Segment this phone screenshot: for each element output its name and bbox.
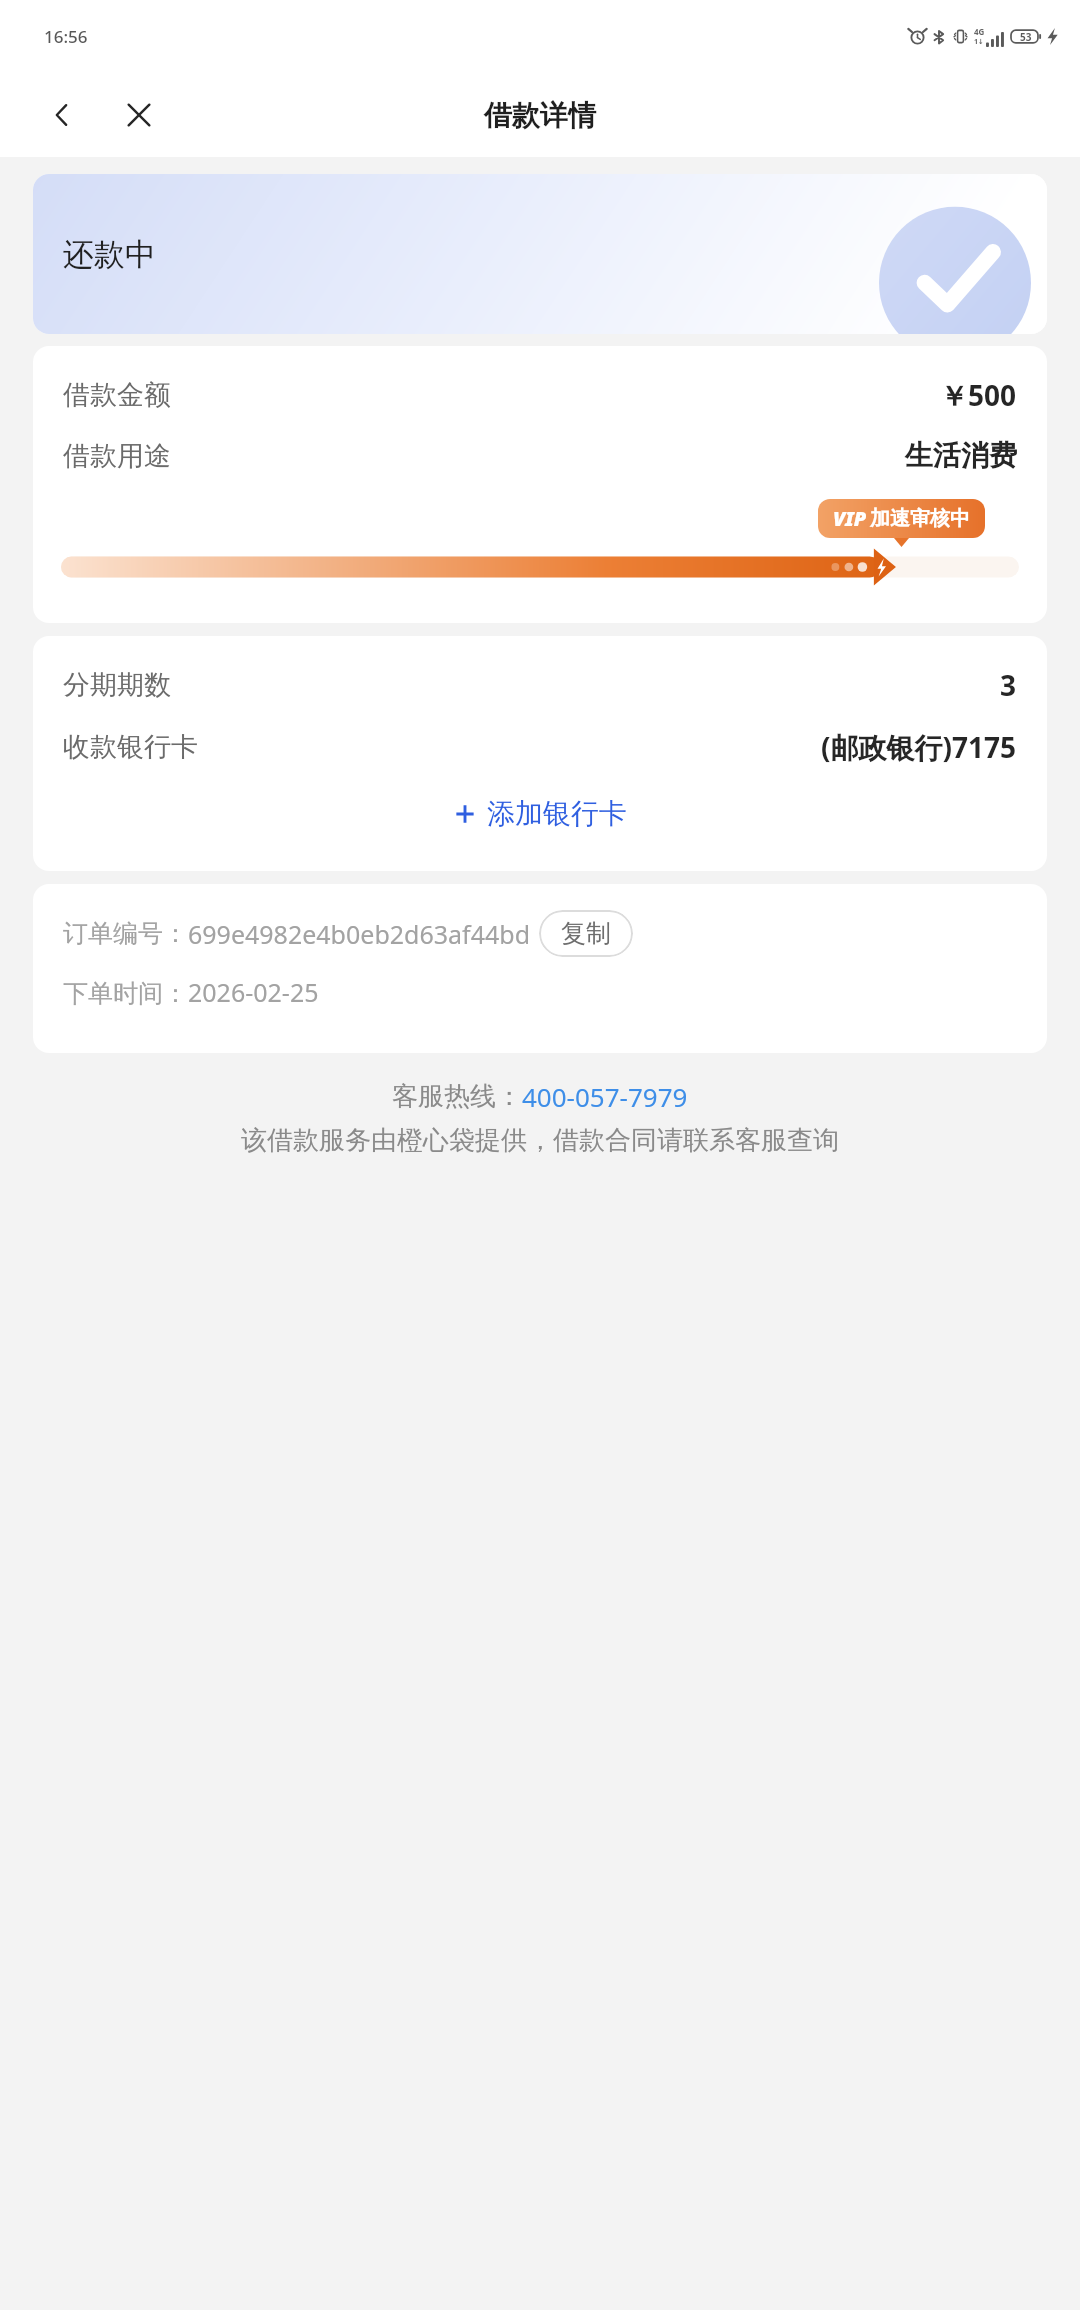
staticText: 加速审核中 [870,506,970,531]
button[interactable]: Close [114,90,164,140]
button[interactable]: 添加银行卡 [33,784,1047,843]
staticText: 生活消费 [905,438,1017,473]
staticText: (邮政银行)7175 [821,728,1017,766]
staticText: 订单编号： [63,918,188,949]
staticText: 借款用途 [63,439,171,473]
staticText: 下单时间：2026-02-25 [63,975,319,1009]
staticText: VIP [833,505,867,532]
staticText: 客服热线： [392,1080,522,1113]
staticText: 699e4982e4b0eb2d63af44bd [188,917,531,951]
staticText: 添加银行卡 [487,796,627,831]
staticText: 1↓ [974,37,984,47]
staticText: 借款金额 [63,378,171,412]
staticText: 借款详情 [484,98,596,133]
button[interactable]: 还款中 [33,174,1047,334]
staticText: 3 [1000,666,1017,704]
staticText: ￥500 [940,376,1017,414]
button[interactable]: Back [38,91,86,139]
staticText: 4G [974,26,985,37]
staticText: 16:56 [44,25,88,48]
staticText: 还款中 [63,235,156,274]
staticText: 53 [1020,30,1032,44]
staticText: 分期期数 [63,668,171,702]
staticText: 400-057-7979 [522,1079,688,1114]
staticText: 该借款服务由橙心袋提供，借款合同请联系客服查询 [241,1124,839,1157]
staticText: 复制 [561,918,611,949]
staticText: 收款银行卡 [63,730,198,764]
button[interactable]: 复制 [539,910,633,957]
button[interactable]: 400-057-7979 [522,1079,688,1114]
